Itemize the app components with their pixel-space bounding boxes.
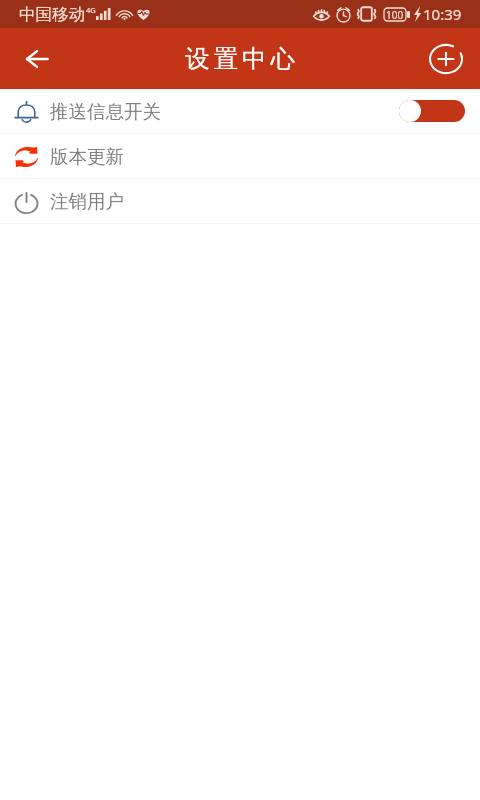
- button[interactable]: 版本更新: [0, 134, 480, 178]
- button[interactable]: 推送信息开关: [0, 89, 480, 133]
- button[interactable]: Back: [13, 35, 61, 83]
- staticText: 4G: [86, 5, 96, 15]
- staticText: 推送信息开关: [50, 100, 161, 123]
- staticText: 注销用户: [50, 190, 124, 213]
- button[interactable]: Push notification toggle: [399, 100, 465, 122]
- staticText: 100: [386, 8, 404, 21]
- button[interactable]: Add: [422, 35, 470, 83]
- staticText: 中国移动: [19, 4, 85, 25]
- staticText: 版本更新: [50, 145, 124, 168]
- staticText: 设置中心: [183, 43, 297, 74]
- button[interactable]: 注销用户: [0, 179, 480, 223]
- staticText: 10:39: [423, 4, 462, 24]
